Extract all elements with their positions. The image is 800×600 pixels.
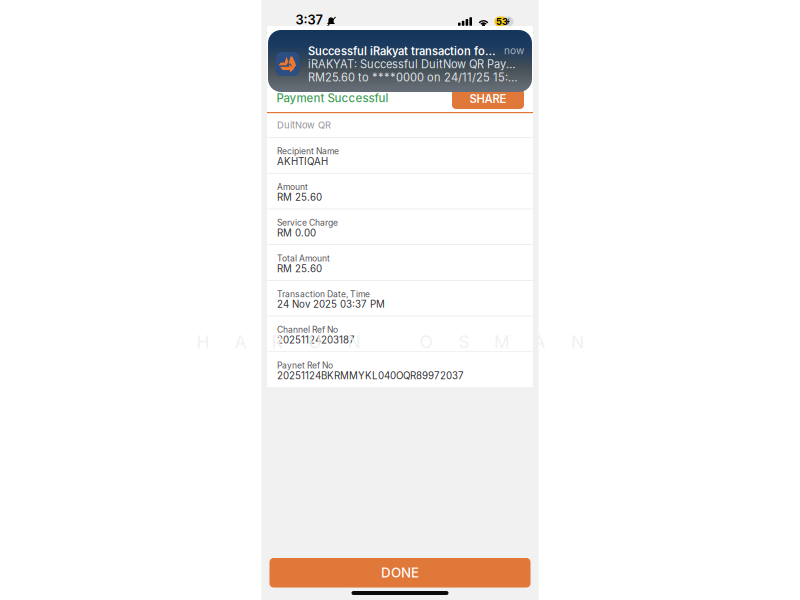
staticText: O	[419, 331, 432, 352]
button[interactable]: Successful iRakyat transaction for Duit…	[268, 30, 532, 92]
staticText: N	[347, 331, 360, 352]
staticText: Transaction Date, Time	[277, 289, 370, 299]
staticText: AKHTIQAH	[277, 156, 328, 167]
staticText: Payment Successful	[276, 91, 388, 105]
staticText: 3:37	[295, 12, 322, 27]
staticText: 53	[496, 16, 508, 27]
button[interactable]: SHARE	[452, 89, 524, 109]
staticText: R	[271, 331, 282, 352]
staticText: SHARE	[469, 92, 506, 106]
staticText: RM 25.60	[276, 43, 362, 66]
staticText: DuitNow QR	[277, 120, 331, 131]
staticText: now	[504, 44, 524, 57]
staticText: Successful iRakyat transaction for Duit…	[308, 44, 496, 58]
staticText: A	[234, 331, 246, 352]
staticText: 24 Nov 2025 03:37 PM	[277, 298, 385, 310]
staticText: DONE	[381, 565, 419, 581]
staticText: Recipient Name	[277, 146, 339, 156]
staticText: 20251124BKRMMYKL040OQR89972037	[277, 370, 464, 382]
staticText: iRAKYAT: Successful DuitNow QR Payment	[308, 58, 524, 71]
staticText: RM 0.00	[277, 227, 316, 239]
staticText: RM 25.60	[277, 263, 322, 274]
staticText: Channel Ref No	[277, 325, 338, 335]
staticText: Paynet Ref No	[277, 360, 333, 371]
staticText: N	[571, 331, 584, 352]
staticText: S	[458, 331, 469, 352]
staticText: 20251124203187	[277, 334, 355, 346]
staticText: A	[533, 331, 545, 352]
staticText: Total Amount	[277, 253, 330, 263]
staticText: M	[494, 331, 510, 352]
staticText: RM 25.60	[277, 191, 322, 203]
staticText: U	[308, 331, 321, 352]
button[interactable]: DONE	[269, 558, 530, 587]
staticText: RM25.60 to ****0000 on 24/11/25 15:37:33…	[308, 71, 524, 84]
staticText: Amount	[277, 182, 308, 192]
staticText: Service Charge	[277, 217, 338, 228]
staticText: H	[196, 331, 209, 352]
